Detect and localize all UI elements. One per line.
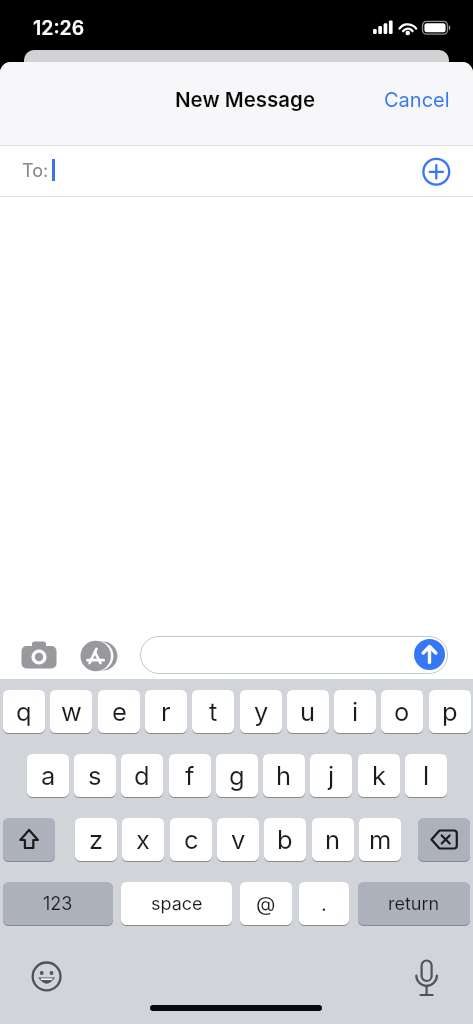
button[interactable] — [3, 818, 55, 861]
staticText: @ — [256, 892, 276, 916]
button[interactable] — [30, 959, 64, 993]
button[interactable]: h — [263, 754, 305, 797]
button[interactable]: return — [358, 882, 470, 925]
staticText: j — [328, 760, 335, 791]
staticText: u — [300, 696, 316, 727]
button[interactable]: c — [170, 818, 212, 861]
staticText: k — [372, 760, 386, 791]
staticText: New Message — [175, 87, 316, 112]
button[interactable]: o — [381, 690, 423, 733]
staticText: z — [89, 824, 104, 855]
button[interactable]: r — [145, 690, 187, 733]
staticText: b — [277, 824, 293, 855]
staticText: 12:26 — [33, 16, 85, 40]
staticText: 123 — [43, 893, 73, 915]
button[interactable] — [18, 638, 60, 674]
button[interactable]: g — [216, 754, 258, 797]
staticText: d — [134, 760, 150, 791]
button[interactable] — [418, 818, 470, 861]
staticText: To: — [22, 160, 49, 182]
button[interactable] — [420, 155, 453, 188]
button[interactable]: b — [264, 818, 306, 861]
button[interactable]: v — [217, 818, 259, 861]
staticText: return — [388, 893, 440, 915]
button[interactable]: a — [27, 754, 69, 797]
staticText: x — [136, 824, 150, 855]
button[interactable]: s — [74, 754, 116, 797]
staticText: m — [369, 824, 392, 855]
button[interactable]: @ — [240, 882, 292, 925]
button[interactable]: q — [3, 690, 45, 733]
button[interactable]: y — [240, 690, 282, 733]
staticText: a — [41, 760, 56, 791]
staticText: p — [442, 696, 458, 727]
staticText: s — [88, 760, 102, 791]
button[interactable]: f — [169, 754, 211, 797]
button[interactable]: p — [429, 690, 471, 733]
button[interactable]: z — [75, 818, 117, 861]
staticText: f — [185, 760, 195, 791]
button[interactable] — [79, 639, 121, 673]
button[interactable]: . — [299, 882, 349, 925]
staticText: i — [352, 696, 359, 727]
button[interactable] — [412, 957, 442, 999]
staticText: y — [254, 696, 269, 727]
button[interactable]: e — [98, 690, 140, 733]
button[interactable]: d — [121, 754, 163, 797]
staticText: g — [229, 760, 245, 791]
staticText: Cancel — [384, 88, 450, 112]
staticText: . — [321, 892, 327, 916]
button[interactable]: u — [287, 690, 329, 733]
button[interactable]: k — [358, 754, 400, 797]
button[interactable]: t — [192, 690, 234, 733]
staticText: c — [184, 824, 199, 855]
staticText: o — [394, 696, 410, 727]
button[interactable]: j — [310, 754, 352, 797]
button[interactable]: space — [121, 882, 232, 925]
staticText: r — [161, 696, 171, 727]
staticText: h — [276, 760, 292, 791]
button[interactable]: l — [405, 754, 447, 797]
button[interactable]: To: — [0, 146, 473, 196]
staticText: l — [423, 760, 430, 791]
button[interactable]: x — [122, 818, 164, 861]
button[interactable]: i — [334, 690, 376, 733]
staticText: t — [209, 696, 218, 727]
staticText: q — [16, 696, 32, 727]
button[interactable]: m — [359, 818, 401, 861]
staticText: space — [151, 893, 203, 915]
button[interactable]: 123 — [3, 882, 113, 925]
staticText: n — [325, 824, 341, 855]
staticText: e — [112, 696, 127, 727]
staticText: v — [231, 824, 246, 855]
staticText: w — [61, 696, 82, 727]
button[interactable]: Cancel — [384, 88, 450, 112]
button[interactable]: w — [50, 690, 92, 733]
button[interactable] — [414, 639, 445, 670]
button[interactable] — [140, 636, 448, 674]
button[interactable]: n — [312, 818, 354, 861]
